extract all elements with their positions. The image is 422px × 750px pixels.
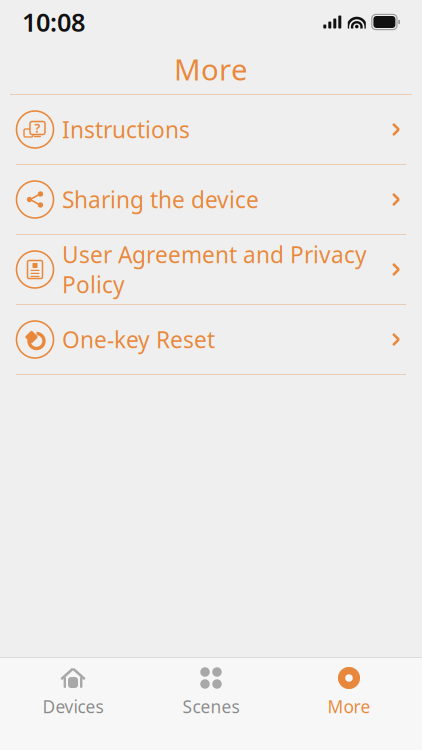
button[interactable]: Scenes: [142, 658, 280, 728]
staticText: User Agreement and Privacy Policy: [62, 239, 367, 300]
staticText: Scenes: [182, 695, 239, 718]
staticText: Instructions: [62, 114, 190, 144]
staticText: Devices: [42, 695, 103, 718]
staticText: One-key Reset: [62, 324, 215, 354]
staticText: Sharing the device: [62, 184, 259, 214]
button[interactable]: User Agreement and Privacy Policy: [0, 235, 422, 304]
staticText: 10:08: [22, 5, 85, 39]
staticText: ?: [34, 120, 40, 136]
button[interactable]: Devices: [4, 658, 142, 728]
button[interactable]: ?: [0, 95, 422, 164]
button[interactable]: Sharing the device: [0, 165, 422, 234]
button[interactable]: More: [280, 658, 418, 728]
button[interactable]: One-key Reset: [0, 305, 422, 374]
staticText: More: [327, 695, 370, 718]
staticText: More: [174, 49, 248, 88]
